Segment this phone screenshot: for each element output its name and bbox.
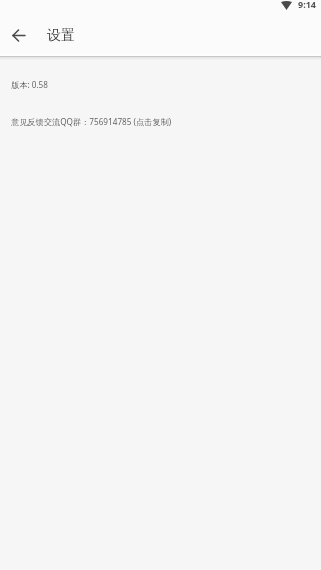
- button[interactable]: 意见反馈交流QQ群：756914785 (点击复制): [11, 116, 172, 127]
- staticText: 设置: [47, 27, 75, 45]
- button[interactable]: Back: [6, 22, 32, 48]
- staticText: 9:14: [298, 0, 316, 10]
- staticText: 版本: 0.58: [11, 79, 48, 90]
